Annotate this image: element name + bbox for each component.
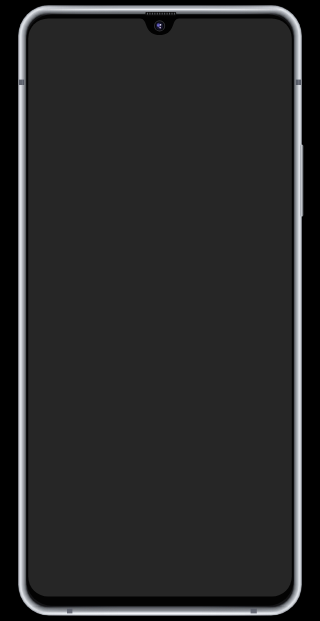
- button[interactable]: [0, 0, 320, 621]
